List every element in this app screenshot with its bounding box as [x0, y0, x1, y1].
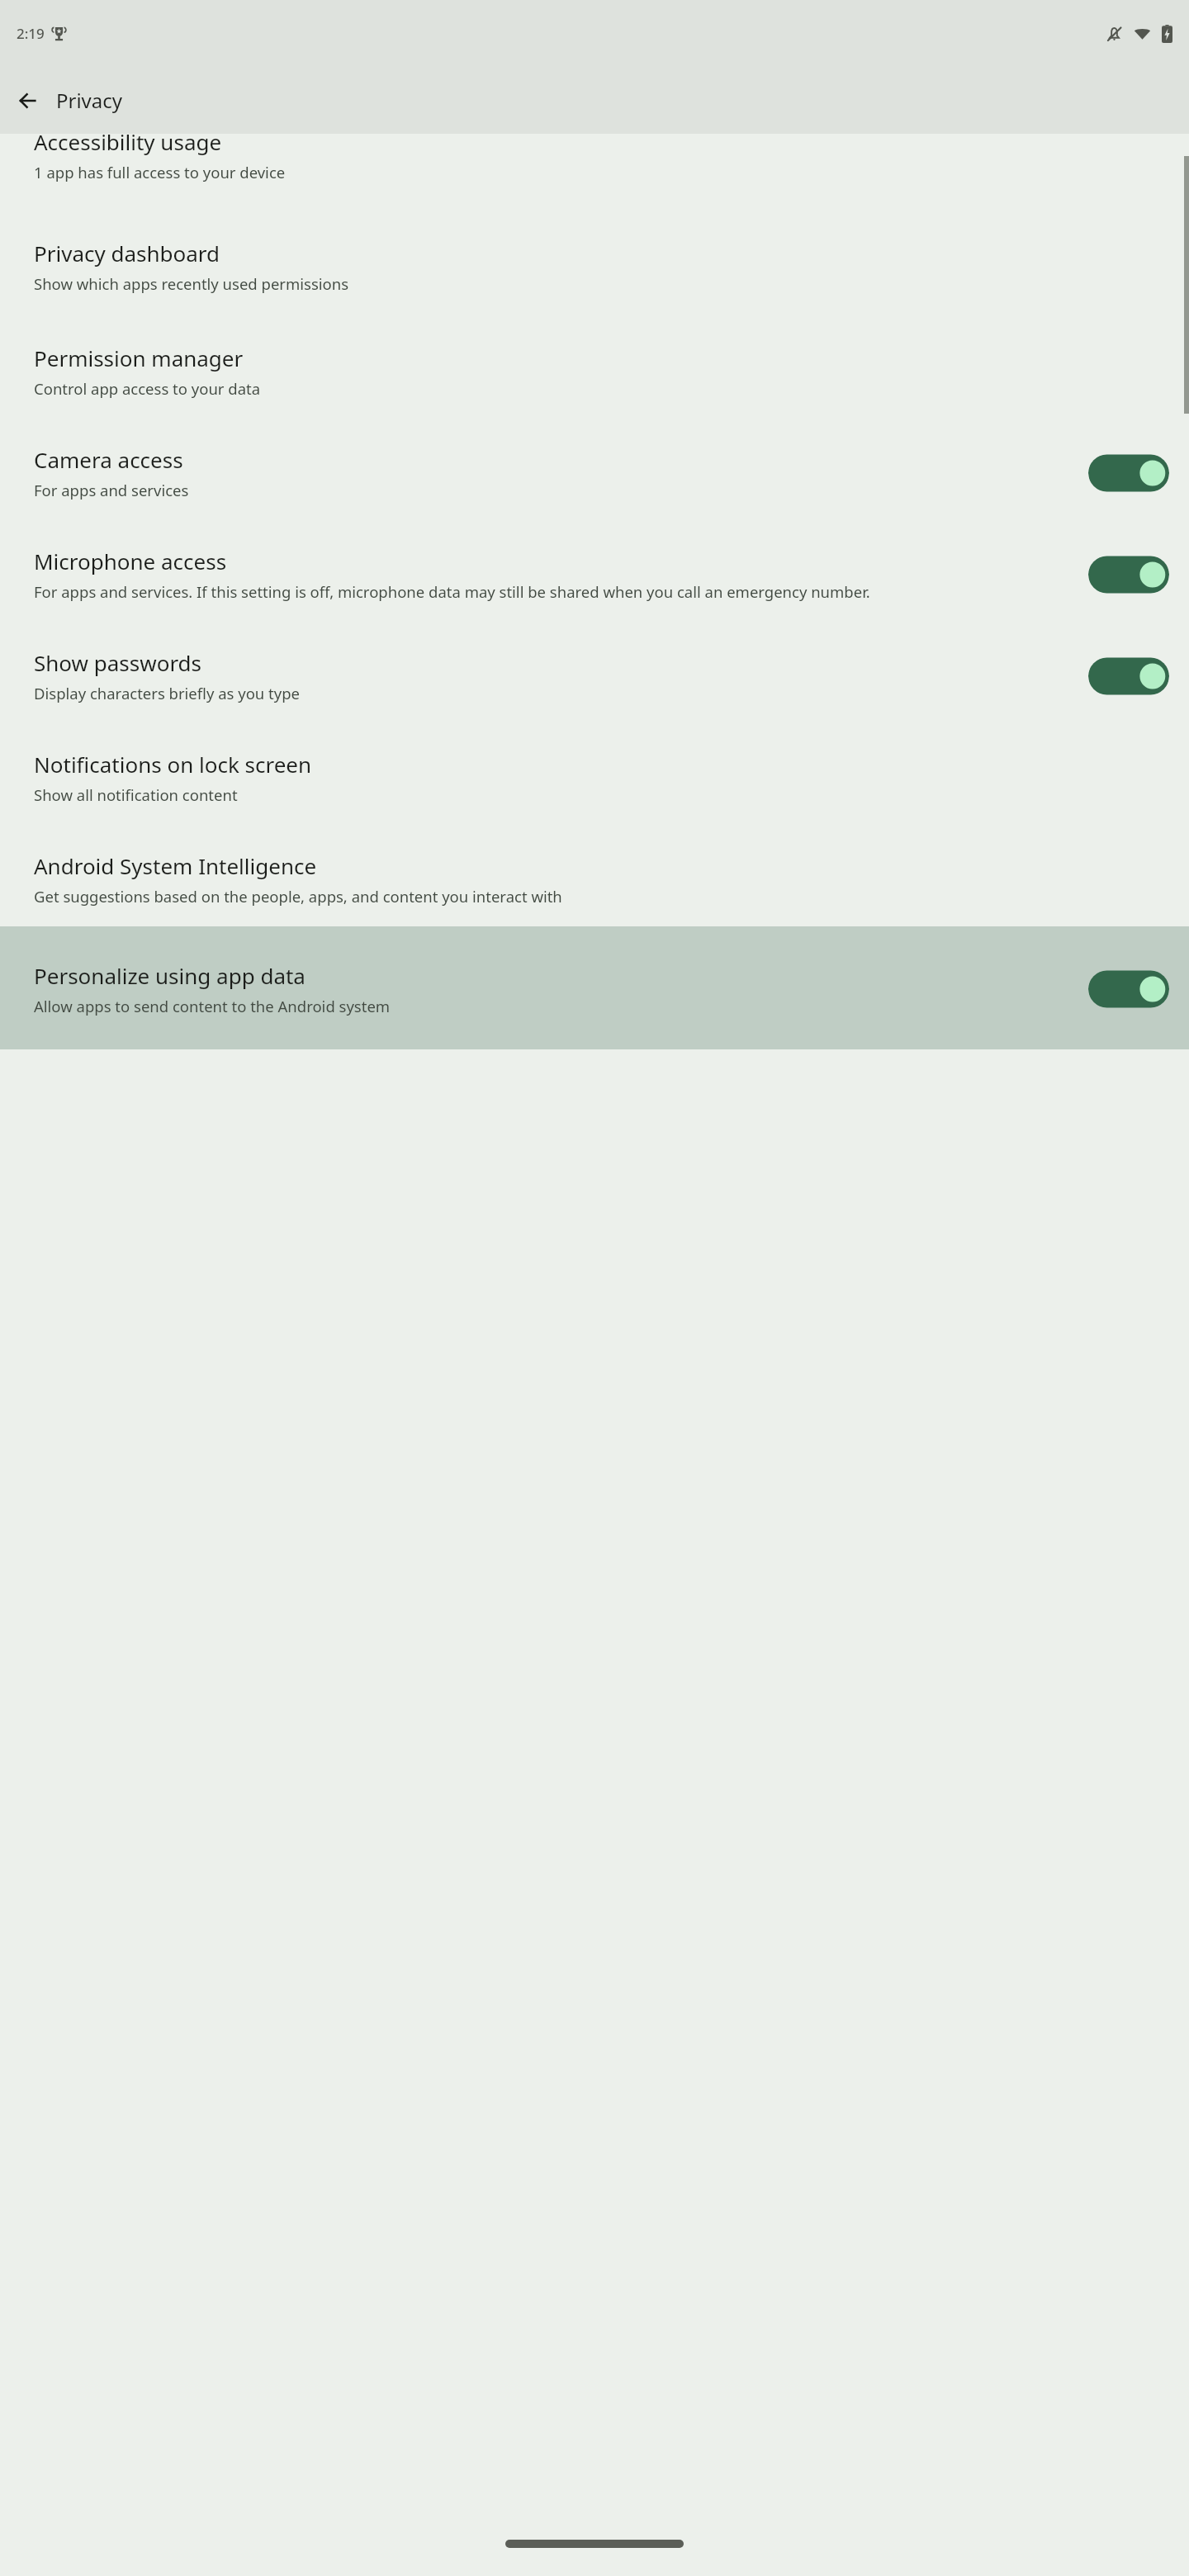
- button[interactable]: Permission manager: [0, 319, 1189, 422]
- button[interactable]: Personalize using app data: [0, 926, 1189, 1049]
- staticText: For apps and services: [34, 480, 189, 500]
- button[interactable]: Privacy dashboard: [0, 214, 1189, 319]
- button[interactable]: Toggle: [1088, 450, 1169, 496]
- staticText: Show passwords: [34, 648, 202, 677]
- button[interactable]: Toggle: [1088, 653, 1169, 699]
- button[interactable]: Microphone access: [0, 523, 1189, 625]
- button[interactable]: Accessibility usage: [0, 134, 1189, 214]
- staticText: Accessibility usage: [34, 127, 222, 156]
- staticText: For apps and services. If this setting i…: [34, 581, 870, 602]
- staticText: Microphone access: [34, 547, 227, 575]
- staticText: 1 app has full access to your device: [34, 162, 286, 182]
- button[interactable]: Notifications on lock screen: [0, 727, 1189, 828]
- button[interactable]: Android System Intelligence: [0, 828, 1189, 926]
- staticText: Android System Intelligence: [34, 851, 317, 880]
- staticText: Privacy: [56, 87, 123, 114]
- button[interactable]: Show passwords: [0, 625, 1189, 727]
- staticText: Personalize using app data: [34, 961, 306, 990]
- button[interactable]: Toggle: [1088, 552, 1169, 598]
- button[interactable]: Back: [8, 81, 48, 121]
- staticText: Control app access to your data: [34, 378, 261, 399]
- staticText: Get suggestions based on the people, app…: [34, 886, 562, 907]
- staticText: Display characters briefly as you type: [34, 683, 301, 703]
- staticText: Notifications on lock screen: [34, 750, 312, 779]
- button[interactable]: Camera access: [0, 422, 1189, 523]
- staticText: Privacy dashboard: [34, 239, 220, 268]
- staticText: Camera access: [34, 445, 183, 474]
- staticText: Allow apps to send content to the Androi…: [34, 996, 391, 1016]
- button[interactable]: Toggle: [1088, 966, 1169, 1012]
- staticText: Show all notification content: [34, 784, 238, 805]
- staticText: Permission manager: [34, 343, 244, 372]
- staticText: Show which apps recently used permission…: [34, 273, 349, 294]
- staticText: 2:19: [17, 24, 45, 43]
